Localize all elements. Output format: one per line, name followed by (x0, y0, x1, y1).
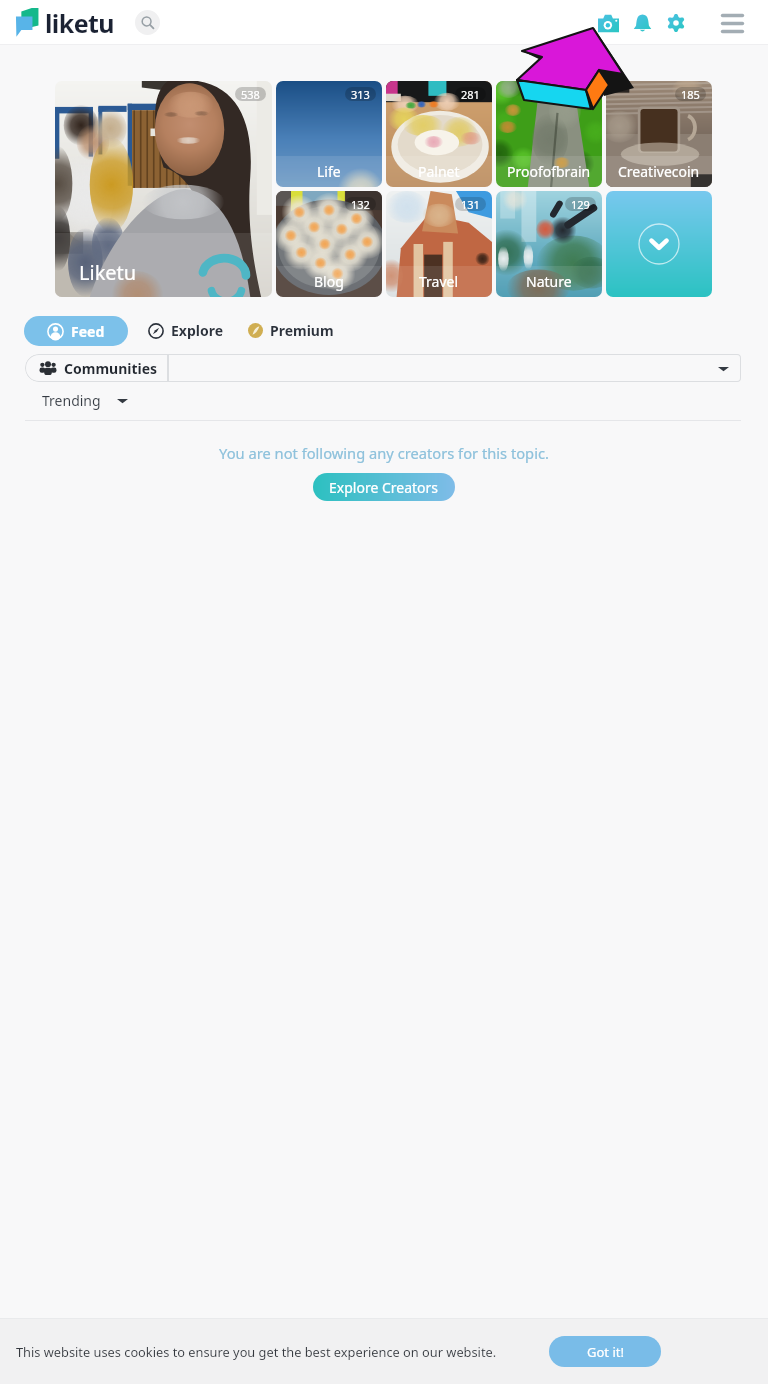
button[interactable]: 185 (606, 81, 712, 187)
button[interactable]: 129 (496, 191, 602, 297)
staticText: Got it! (587, 1343, 624, 1361)
staticText: 313 (351, 87, 370, 101)
staticText: Communities (64, 359, 158, 378)
staticText: Liketu (79, 259, 137, 286)
button[interactable]: Premium (248, 315, 334, 346)
button[interactable]: Settings (661, 8, 691, 38)
staticText: Nature (526, 272, 572, 291)
staticText: 185 (681, 87, 700, 101)
staticText: 129 (571, 197, 590, 211)
button[interactable]: 313 (276, 81, 382, 187)
staticText: 129 (571, 87, 590, 101)
staticText: Blog (314, 272, 344, 291)
button[interactable]: 129 (496, 81, 602, 187)
staticText: Explore Creators (329, 478, 439, 497)
staticText: Trending (42, 391, 101, 410)
staticText: Travel (419, 272, 459, 291)
button[interactable]: Explore Creators (313, 473, 455, 501)
button[interactable]: 132 (276, 191, 382, 297)
staticText: Explore (171, 321, 224, 340)
button[interactable]: 538 (55, 81, 272, 297)
staticText: 538 (241, 87, 260, 101)
staticText: This website uses cookies to ensure you … (16, 1343, 497, 1360)
staticText: liketu (45, 6, 114, 40)
staticText: 281 (461, 87, 480, 101)
button[interactable]: Communities (25, 354, 168, 382)
staticText: Creativecoin (618, 162, 700, 181)
button[interactable]: Menu (717, 8, 747, 38)
button[interactable]: Show more communities (606, 191, 712, 297)
button[interactable]: Got it! (549, 1336, 661, 1367)
button[interactable]: Select community (168, 354, 741, 382)
staticText: 132 (351, 197, 370, 211)
button[interactable]: Feed (24, 316, 128, 346)
button[interactable]: Trending (42, 391, 128, 410)
staticText: Life (317, 162, 341, 181)
button[interactable]: Camera (593, 8, 623, 38)
staticText: 131 (461, 197, 480, 211)
staticText: Premium (270, 321, 334, 340)
staticText: You are not following any creators for t… (219, 443, 549, 463)
staticText: Proofofbrain (507, 162, 591, 181)
button[interactable]: Notifications (627, 8, 657, 38)
button[interactable]: Search (135, 10, 160, 35)
button[interactable]: Explore (148, 315, 224, 346)
button[interactable]: 131 (386, 191, 492, 297)
staticText: Feed (71, 322, 105, 341)
staticText: Palnet (418, 162, 460, 181)
button[interactable]: 281 (386, 81, 492, 187)
